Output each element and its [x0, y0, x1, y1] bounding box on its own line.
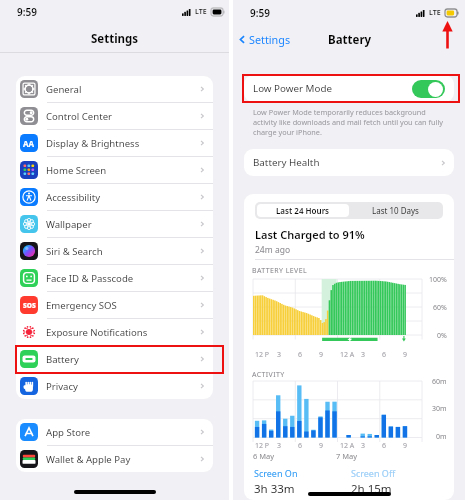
- staticText: 9: [319, 441, 324, 451]
- staticText: 2h 15m: [351, 481, 392, 497]
- button[interactable]: AA: [16, 130, 213, 157]
- staticText: ACTIVITY: [252, 370, 285, 380]
- button[interactable]: Home Screen: [16, 157, 213, 184]
- button[interactable]: Wallpaper: [16, 211, 213, 238]
- staticText: Exposure Notifications: [46, 326, 148, 339]
- staticText: 7 May: [336, 451, 358, 461]
- button[interactable]: App Store: [16, 419, 213, 446]
- staticText: 60m: [432, 377, 447, 387]
- staticText: 3: [361, 350, 366, 360]
- button[interactable]: Face ID & Passcode: [16, 265, 213, 292]
- staticText: Battery: [328, 32, 372, 48]
- staticText: LTE: [429, 8, 441, 18]
- staticText: 6: [298, 350, 303, 360]
- staticText: Screen On: [254, 467, 298, 479]
- button[interactable]: Privacy: [16, 373, 213, 399]
- button[interactable]: General: [16, 76, 213, 103]
- staticText: 12 P: [255, 441, 270, 451]
- staticText: 24m ago: [255, 244, 291, 256]
- button[interactable]: Wallet & Apple Pay: [16, 446, 213, 472]
- staticText: 3: [361, 441, 366, 451]
- button[interactable]: Last 10 Days: [349, 204, 441, 217]
- staticText: SOS: [23, 301, 36, 310]
- staticText: Face ID & Passcode: [46, 272, 134, 285]
- button[interactable]: Battery: [16, 346, 213, 373]
- staticText: LTE: [195, 7, 207, 17]
- staticText: Display & Brightness: [46, 137, 140, 150]
- staticText: AA: [23, 138, 35, 149]
- staticText: 9: [403, 350, 408, 360]
- staticText: 30m: [432, 404, 447, 414]
- staticText: 6: [298, 441, 303, 451]
- button[interactable]: Accessibility: [16, 184, 213, 211]
- button[interactable]: Low Power Mode: [244, 75, 454, 102]
- staticText: Low Power Mode: [253, 82, 332, 95]
- staticText: 60%: [433, 303, 447, 313]
- button[interactable]: Control Center: [16, 103, 213, 130]
- staticText: Home Screen: [46, 164, 107, 177]
- staticText: 6: [382, 441, 387, 451]
- staticText: Settings: [249, 32, 291, 47]
- staticText: Control Center: [46, 110, 113, 123]
- staticText: Privacy: [46, 380, 78, 393]
- staticText: Low Power Mode temporarily reduces backg…: [253, 107, 449, 137]
- staticText: 6 May: [253, 451, 275, 461]
- other: Pointer: [233, 0, 465, 500]
- button[interactable]: Siri & Search: [16, 238, 213, 265]
- staticText: 9: [319, 350, 324, 360]
- staticText: 12 A: [340, 350, 355, 360]
- staticText: 9:59: [17, 5, 37, 19]
- staticText: Emergency SOS: [46, 299, 117, 312]
- staticText: Battery: [46, 353, 79, 366]
- staticText: 3: [277, 350, 282, 360]
- staticText: 9: [403, 441, 408, 451]
- staticText: 0m: [436, 432, 447, 442]
- staticText: Settings: [91, 31, 139, 47]
- staticText: Accessibility: [46, 191, 101, 204]
- staticText: General: [46, 83, 82, 96]
- staticText: 3h 33m: [254, 481, 295, 497]
- staticText: Last 10 Days: [372, 205, 419, 216]
- button[interactable]: Last 24 Hours: [257, 204, 349, 217]
- staticText: 3: [277, 441, 282, 451]
- staticText: Wallpaper: [46, 218, 92, 231]
- staticText: 100%: [429, 275, 447, 285]
- staticText: 6: [382, 350, 387, 360]
- staticText: Battery Health: [253, 156, 320, 169]
- button[interactable]: Exposure Notifications: [16, 319, 213, 346]
- staticText: Last Charged to 91%: [255, 227, 365, 242]
- staticText: 12 P: [255, 350, 270, 360]
- staticText: App Store: [46, 426, 91, 439]
- staticText: Wallet & Apple Pay: [46, 453, 131, 466]
- button[interactable]: SOS: [16, 292, 213, 319]
- staticText: Siri & Search: [46, 245, 103, 258]
- staticText: 12 A: [340, 441, 355, 451]
- button[interactable]: Settings: [236, 32, 291, 47]
- staticText: 0%: [437, 331, 447, 341]
- staticText: Screen Off: [351, 467, 396, 479]
- button[interactable]: Battery Health: [244, 149, 454, 176]
- staticText: BATTERY LEVEL: [252, 266, 308, 276]
- staticText: Last 24 Hours: [276, 205, 330, 216]
- staticText: 9:59: [250, 6, 270, 20]
